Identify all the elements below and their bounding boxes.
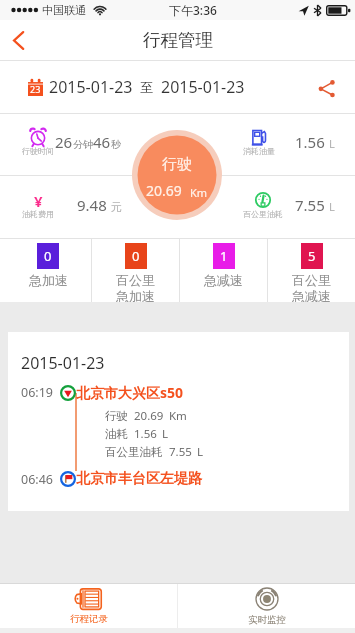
staticText: L [329,199,335,214]
staticText: L [162,426,169,442]
staticText: 行驶 [105,409,128,423]
staticText: 7.55 [295,195,325,215]
staticText: 1.56 [134,426,157,442]
staticText: 急加速 [29,272,68,288]
staticText: Km [190,185,208,200]
staticText: 26 [55,132,73,152]
button[interactable]: 0 [92,239,179,302]
staticText: 急减速 [204,272,243,288]
button[interactable]: 23 [28,76,245,98]
staticText: 百公里 [292,272,331,288]
button[interactable]: Share [311,72,341,102]
staticText: L [329,136,335,151]
staticText: 2015-01-23 [21,352,105,374]
staticText: 元 [111,200,122,214]
button[interactable]: 5 [268,239,355,302]
staticText: 0 [132,247,140,265]
staticText: 中国联通 [42,3,86,17]
staticText: 7.55 [169,444,192,460]
staticText: 百公里 [116,272,155,288]
staticText: 急加速 [116,288,155,302]
staticText: L [197,444,204,460]
button[interactable]: 2015-01-23 [8,332,349,511]
staticText: 2015-01-23 [161,76,245,98]
staticText: Km [169,408,187,424]
staticText: 秒 [111,138,121,151]
staticText: 至 [140,79,153,95]
staticText: 百公里油耗 [243,209,283,219]
staticText: 下午3:36 [169,2,217,18]
staticText: 油耗 [105,427,128,441]
staticText: 2015-01-23 [49,76,133,98]
staticText: 20.69 [146,181,182,200]
staticText: 9.48 [77,195,107,215]
staticText: 行驶 [162,155,192,174]
staticText: 急减速 [292,288,331,302]
staticText: 0 [44,247,52,265]
staticText: 46 [93,132,111,152]
staticText: 行程管理 [143,29,213,51]
staticText: 23 [30,83,41,95]
staticText: ¥ [34,191,43,209]
staticText: 分钟 [73,138,93,151]
staticText: 行驶时间 [22,146,54,156]
button[interactable]: 0 [5,239,91,302]
staticText: 北京市丰台区左堤路 [76,470,202,488]
staticText: 20.69 [134,408,164,424]
button[interactable]: 行程记录 [0,584,177,628]
button[interactable]: Back [1,22,35,58]
staticText: 百公里油耗 [105,445,163,459]
staticText: 5 [308,247,316,265]
staticText: 06:19 [21,384,53,401]
staticText: 06:46 [21,471,53,488]
staticText: 北京市大兴区s50 [76,383,184,402]
button[interactable]: 实时监控 [178,584,355,628]
staticText: 1 [220,247,228,265]
staticText: 行程记录 [70,613,108,625]
staticText: 实时监控 [248,614,286,626]
staticText: 消耗油量 [243,146,275,156]
button[interactable]: 1 [180,239,267,302]
staticText: 油耗费用 [22,209,54,219]
staticText: 1.56 [295,132,325,152]
